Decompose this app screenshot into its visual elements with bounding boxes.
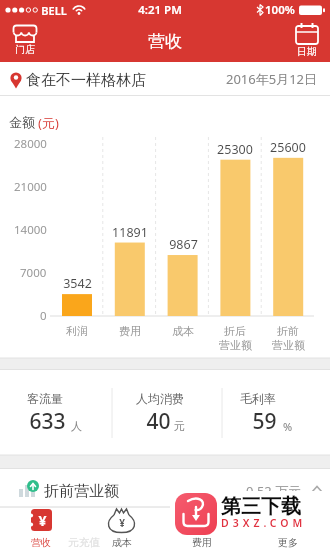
staticText: 4:21 PM [138,2,182,18]
button[interactable] [170,491,330,537]
staticText: 金额 [9,114,35,130]
staticText: D3XZ.COM [221,516,307,530]
staticText: 0.52 万元 [246,482,302,500]
button[interactable] [286,22,326,60]
staticText: 633 [29,407,66,436]
staticText: 食在不一样格林店 [26,71,146,90]
staticText: 9867 [169,236,198,253]
staticText: 毛利率 [240,391,276,406]
staticText: 7000 [20,265,47,281]
staticText: 人 [71,419,82,433]
staticText: 成本 [112,536,132,549]
button[interactable] [164,507,246,550]
staticText: 折后 [224,324,246,338]
staticText: 折前营业额 [44,482,119,501]
staticText: 客流量 [27,391,63,406]
staticText: 100% [265,2,295,18]
staticText: 营收 [31,536,51,549]
button[interactable] [246,507,330,550]
staticText: 人均消费 [136,391,184,406]
staticText: 25600 [270,139,306,156]
staticText: 25300 [217,141,253,158]
staticText: 59 [252,407,277,436]
staticText: 费用 [119,324,141,338]
staticText: 11891 [112,224,148,241]
staticText: 折前 [277,324,299,338]
staticText: 第三下载 [221,494,301,519]
button[interactable] [8,22,48,60]
button[interactable] [0,507,82,550]
button[interactable] [0,62,330,96]
staticText: 28000 [14,136,47,152]
staticText: 元充值 [68,536,100,549]
staticText: 日期 [297,45,317,58]
staticText: 费用 [192,536,212,549]
staticText: ¥ [38,511,47,530]
staticText: 40 [146,407,171,436]
staticText: 成本 [172,324,194,338]
staticText: (元) [38,114,59,132]
button[interactable] [0,469,330,507]
staticText: 14000 [14,222,47,238]
button[interactable] [82,507,164,550]
staticText: 营业额 [219,338,252,352]
staticText: ¥ [119,516,125,530]
staticText: 21000 [14,179,47,195]
staticText: 利润 [66,324,88,338]
staticText: 3542 [63,275,92,292]
staticText: 0 [40,308,47,324]
staticText: % [283,419,293,434]
staticText: BELL [41,3,67,18]
staticText: 营业额 [272,338,305,352]
staticText: 元 [174,419,185,433]
staticText: 更多 [278,536,298,549]
staticText: 营收 [148,31,182,52]
staticText: 2016年5月12日 [226,70,318,88]
staticText: 门店 [15,43,35,56]
